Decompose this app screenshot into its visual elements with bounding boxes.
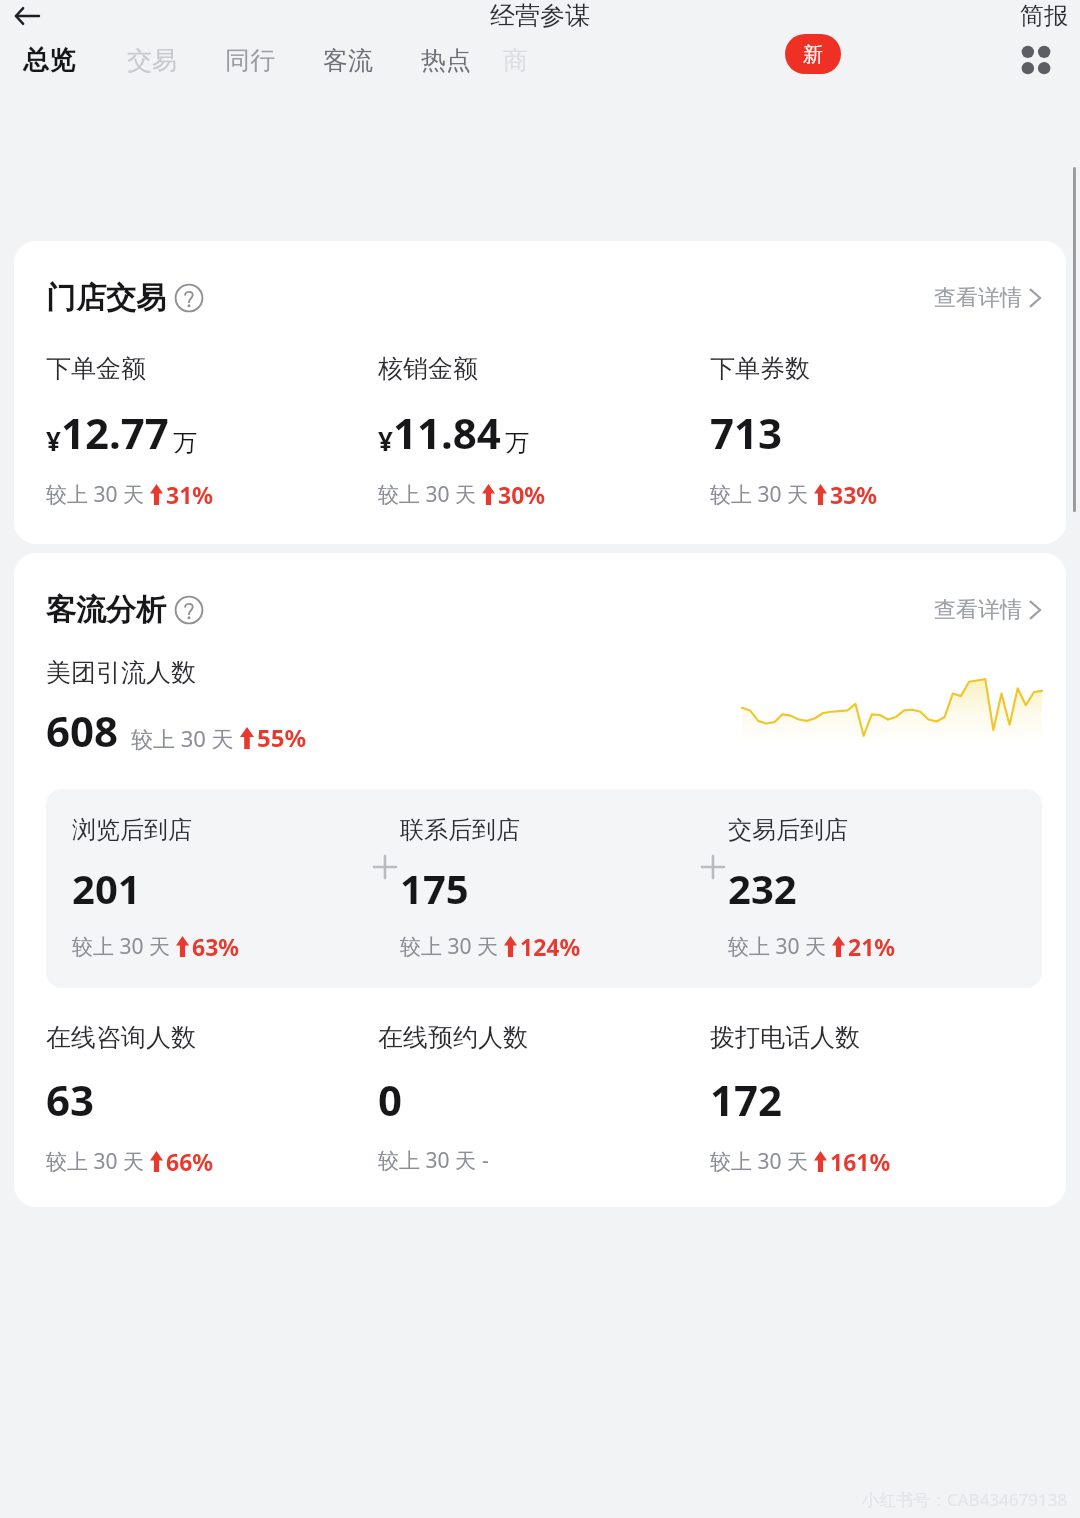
button[interactable]: 查看详情 xyxy=(934,596,1042,624)
staticText: 12.77 xyxy=(61,404,169,461)
button[interactable]: 同行 xyxy=(221,39,279,82)
staticText: 客流 xyxy=(323,45,373,76)
staticText: 浏览后到店 xyxy=(72,815,192,845)
button[interactable]: 商 xyxy=(501,39,530,82)
staticText: 21% xyxy=(848,931,896,962)
button[interactable]: 交易 xyxy=(123,39,181,82)
staticText: 63% xyxy=(192,931,240,962)
staticText: 核销金额 xyxy=(378,353,478,384)
button[interactable]: More tabs xyxy=(1010,34,1062,86)
staticText: 30% xyxy=(498,479,546,510)
staticText: 万 xyxy=(505,428,529,458)
staticText: 查看详情 xyxy=(934,596,1022,624)
staticText: 较上 30 天 xyxy=(46,480,150,509)
staticText: 124% xyxy=(520,931,581,962)
staticText: 较上 30 天 xyxy=(378,1146,482,1175)
button[interactable]: 查看详情 xyxy=(934,284,1042,312)
button[interactable]: 客流分析 xyxy=(46,591,204,629)
staticText: 下单券数 xyxy=(710,353,810,384)
staticText: 联系后到店 xyxy=(400,815,520,845)
button[interactable]: 门店交易 xyxy=(46,279,204,317)
staticText: 门店交易 xyxy=(46,279,166,317)
staticText: 万 xyxy=(173,428,197,458)
staticText: 美团引流人数 xyxy=(46,657,196,688)
staticText: 同行 xyxy=(225,45,275,76)
staticText: 在线咨询人数 xyxy=(46,1022,196,1053)
button[interactable]: 总览 xyxy=(19,38,79,83)
staticText: 经营参谋 xyxy=(490,0,590,31)
staticText: 较上 30 天 xyxy=(710,480,814,509)
staticText: 55% xyxy=(257,721,307,754)
button[interactable]: Back xyxy=(11,2,43,30)
staticText: 较上 30 天 xyxy=(710,1147,814,1176)
button[interactable]: 客流 xyxy=(319,39,377,82)
staticText: 713 xyxy=(710,404,783,461)
staticText: 较上 30 天 xyxy=(72,932,176,961)
staticText: 在线预约人数 xyxy=(378,1022,528,1053)
staticText: 较上 30 天 xyxy=(400,932,504,961)
staticText: - xyxy=(482,1146,489,1175)
staticText: 客流分析 xyxy=(46,591,166,629)
staticText: 33% xyxy=(830,479,878,510)
staticText: 较上 30 天 xyxy=(728,932,832,961)
staticText: ¥ xyxy=(46,423,61,458)
staticText: 175 xyxy=(400,861,469,915)
staticText: 较上 30 天 xyxy=(378,480,482,509)
button[interactable]: 热点 xyxy=(417,39,475,82)
button[interactable]: 简报 xyxy=(1020,1,1068,31)
staticText: 31% xyxy=(166,479,214,510)
staticText: 较上 30 天 xyxy=(131,723,240,753)
staticText: 201 xyxy=(72,861,141,915)
staticText: 拨打电话人数 xyxy=(710,1022,860,1053)
staticText: 172 xyxy=(710,1071,783,1128)
staticText: 11.84 xyxy=(393,404,501,461)
staticText: 商 xyxy=(503,45,528,76)
staticText: 232 xyxy=(728,861,797,915)
staticText: 0 xyxy=(378,1071,403,1128)
staticText: 63 xyxy=(46,1071,95,1128)
staticText: 608 xyxy=(46,702,119,759)
staticText: 新 xyxy=(803,42,823,67)
staticText: 161% xyxy=(830,1146,891,1177)
staticText: 简报 xyxy=(1020,1,1068,31)
staticText: 较上 30 天 xyxy=(46,1147,150,1176)
staticText: 交易后到店 xyxy=(728,815,848,845)
staticText: 66% xyxy=(166,1146,214,1177)
staticText: 交易 xyxy=(127,45,177,76)
staticText: 查看详情 xyxy=(934,284,1022,312)
staticText: ¥ xyxy=(378,423,393,458)
staticText: 下单金额 xyxy=(46,353,146,384)
staticText: 总览 xyxy=(23,44,75,77)
staticText: 热点 xyxy=(421,45,471,76)
staticText: 小红书号：CAB434679138 xyxy=(862,1488,1068,1511)
